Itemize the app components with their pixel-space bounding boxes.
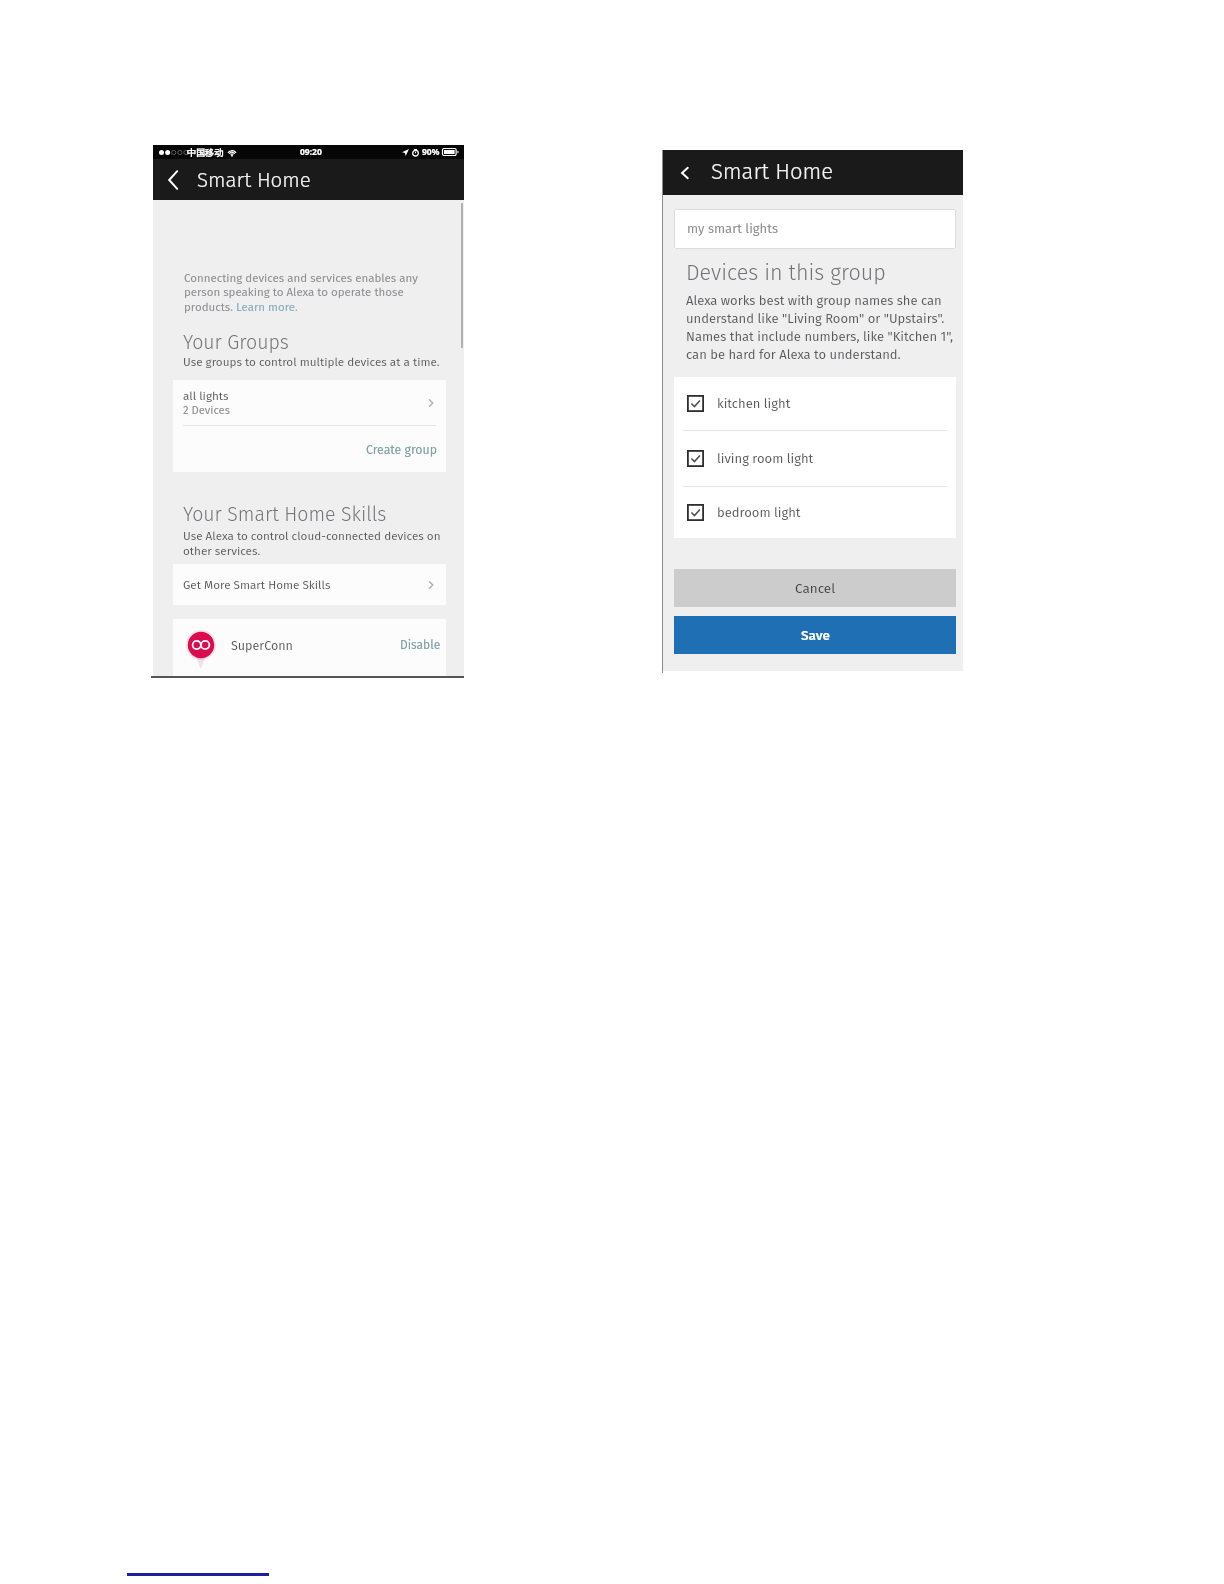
- staticText: Disable: [400, 638, 441, 652]
- staticText: kitchen light: [717, 396, 791, 412]
- staticText: Smart Home: [197, 168, 311, 193]
- button[interactable]: all lights: [173, 380, 446, 425]
- staticText: Devices in this group: [686, 260, 886, 286]
- button[interactable]: Cancel: [674, 569, 956, 607]
- staticText: Smart Home: [711, 158, 834, 184]
- button[interactable]: my smart lights: [674, 209, 956, 249]
- staticText: 90%: [422, 146, 440, 158]
- staticText: Your Groups: [183, 331, 289, 354]
- staticText: Save: [801, 627, 830, 643]
- button[interactable]: Get More Smart Home Skills: [173, 564, 446, 605]
- button[interactable]: Save: [674, 616, 956, 654]
- button[interactable]: kitchen light: [674, 377, 956, 430]
- staticText: SuperConn: [231, 638, 293, 653]
- staticText: Connecting devices and services enables …: [184, 271, 424, 314]
- staticText: bedroom light: [717, 505, 801, 521]
- button[interactable]: Back: [669, 150, 701, 195]
- staticText: Cancel: [795, 580, 836, 596]
- button[interactable]: bedroom light: [674, 487, 956, 538]
- staticText: Create group: [366, 442, 437, 457]
- staticText: all lights: [183, 389, 229, 403]
- staticText: Alexa works best with group names she ca…: [686, 293, 958, 362]
- staticText: Use groups to control multiple devices a…: [183, 355, 440, 369]
- staticText: 09:20: [300, 146, 322, 158]
- staticText: my smart lights: [687, 221, 778, 237]
- staticText: living room light: [717, 451, 814, 467]
- button[interactable]: SuperConn: [173, 619, 446, 676]
- button[interactable]: living room light: [674, 431, 956, 486]
- button[interactable]: Back: [158, 159, 188, 200]
- staticText: Your Smart Home Skills: [183, 503, 387, 526]
- staticText: 中国移动: [187, 147, 223, 158]
- button[interactable]: Create group: [173, 426, 446, 472]
- staticText: Use Alexa to control cloud-connected dev…: [183, 529, 445, 558]
- staticText: Get More Smart Home Skills: [183, 578, 426, 592]
- staticText: 2 Devices: [183, 404, 230, 417]
